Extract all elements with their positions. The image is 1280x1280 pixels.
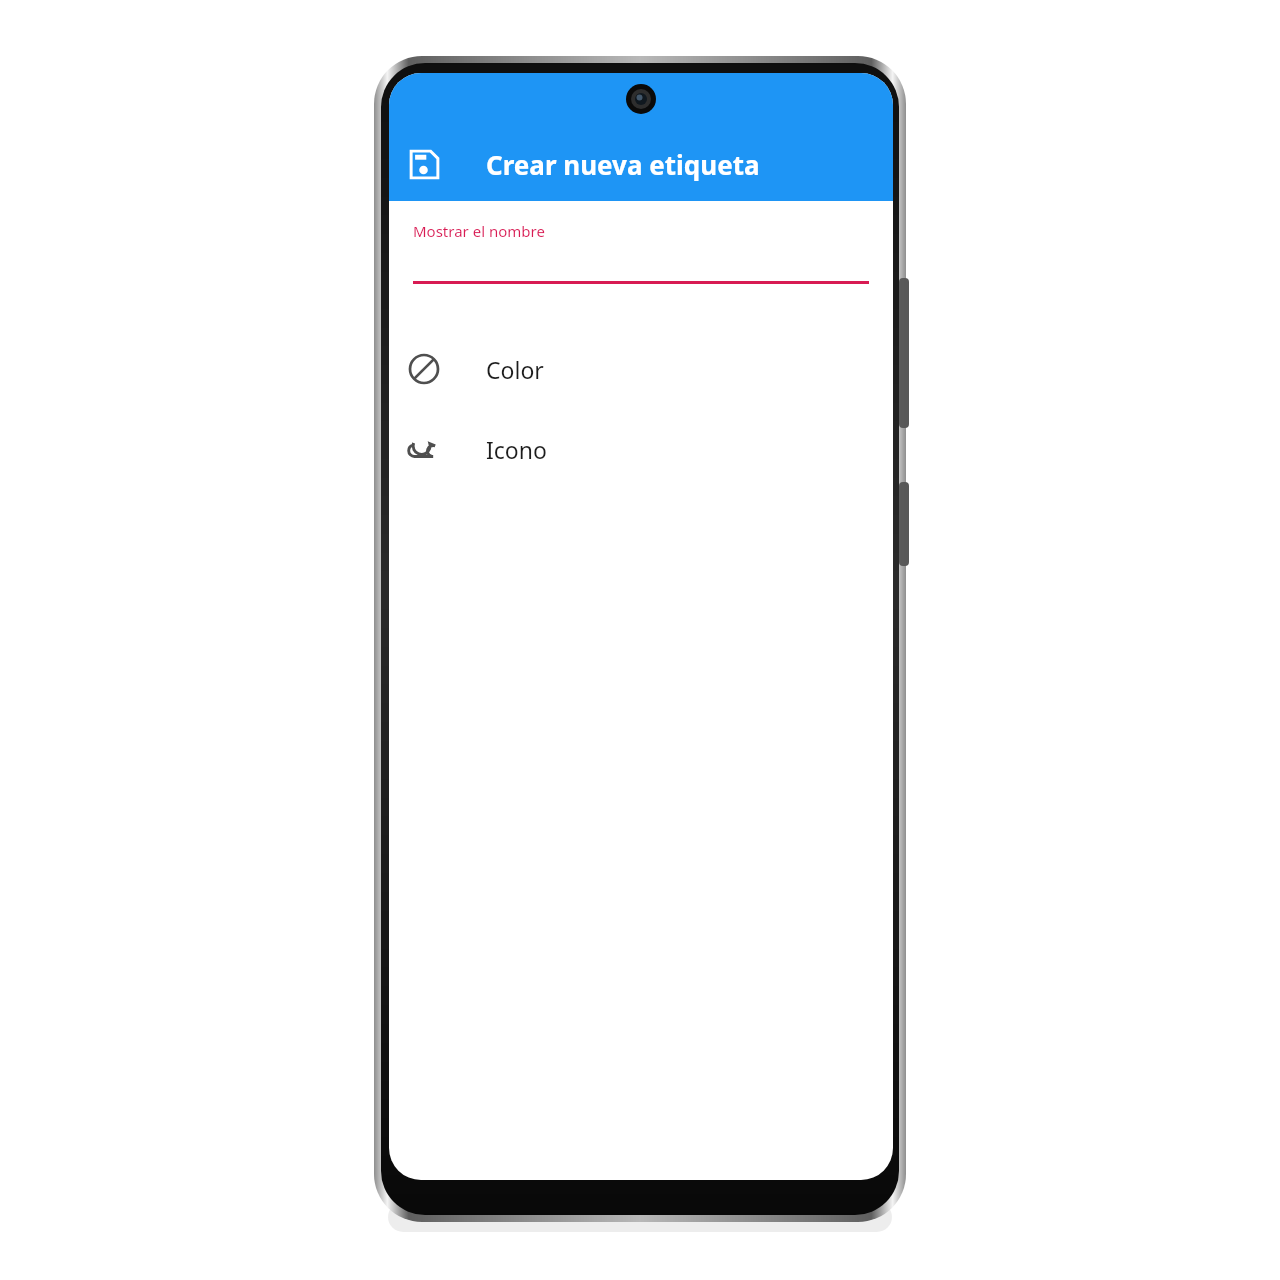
- button[interactable]: Mostrar el nombre: [413, 221, 869, 284]
- button[interactable]: Icono: [389, 409, 893, 489]
- button[interactable]: Color: [389, 329, 893, 409]
- staticText: Mostrar el nombre: [413, 221, 545, 241]
- button[interactable]: Guardar: [400, 140, 448, 188]
- staticText: Icono: [486, 434, 547, 465]
- staticText: Color: [486, 354, 544, 385]
- staticText: Crear nueva etiqueta: [486, 147, 760, 182]
